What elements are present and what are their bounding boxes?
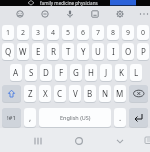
staticText: 1 <box>6 28 11 38</box>
button[interactable]: A <box>10 64 22 81</box>
button[interactable]: R <box>47 43 59 60</box>
button[interactable]: 6 <box>77 25 89 40</box>
button[interactable]: C <box>54 85 66 102</box>
staticText: 3 <box>36 28 41 38</box>
button[interactable]: Z <box>24 85 36 102</box>
staticText: Z <box>28 88 33 99</box>
button[interactable]: !#1 <box>2 108 21 127</box>
staticText: 4 <box>51 28 56 38</box>
staticText: P <box>141 46 146 57</box>
button[interactable]: B <box>84 85 96 102</box>
button[interactable]: S <box>25 64 37 81</box>
button[interactable] <box>63 7 77 21</box>
button[interactable]: 9 <box>122 25 134 40</box>
staticText: Y <box>81 46 86 57</box>
button[interactable]: J <box>100 64 112 81</box>
staticText: C <box>57 88 63 99</box>
staticText: 2 <box>21 28 26 38</box>
button[interactable]: 4 <box>47 25 59 40</box>
button[interactable] <box>13 7 27 21</box>
button[interactable]: H <box>85 64 97 81</box>
staticText: W <box>19 46 27 57</box>
button[interactable]: G <box>70 64 82 81</box>
button[interactable] <box>71 133 87 149</box>
staticText: . <box>119 112 122 123</box>
staticText: S <box>29 67 34 78</box>
staticText: F <box>59 67 64 78</box>
staticText: B <box>87 88 93 99</box>
button[interactable]: E <box>32 43 44 60</box>
button[interactable]: F <box>55 64 67 81</box>
staticText: 8 <box>111 28 116 38</box>
button[interactable]: L <box>130 64 142 81</box>
button[interactable]: M <box>114 85 126 102</box>
button[interactable] <box>38 7 52 21</box>
button[interactable]: , <box>24 108 36 127</box>
button[interactable]: 0 <box>137 25 149 40</box>
button[interactable]: 2 <box>17 25 29 40</box>
button[interactable]: K <box>115 64 127 81</box>
staticText: M <box>116 88 124 99</box>
staticText: D <box>43 67 49 78</box>
button[interactable] <box>2 85 21 102</box>
staticText: family medicine physicians <box>40 0 98 6</box>
button[interactable]: 1 <box>2 25 14 40</box>
staticText: English (US) <box>60 114 91 121</box>
button[interactable]: T <box>62 43 74 60</box>
staticText: L <box>134 67 139 78</box>
staticText: N <box>102 88 109 99</box>
button[interactable]: 3 <box>32 25 44 40</box>
button[interactable]: Y <box>77 43 89 60</box>
button[interactable] <box>129 85 148 102</box>
button[interactable]: 5 <box>62 25 74 40</box>
button[interactable]: W <box>17 43 29 60</box>
staticText: E <box>36 46 41 57</box>
button[interactable]: Q <box>2 43 14 60</box>
staticText: 5 <box>66 28 71 38</box>
staticText: 0 <box>141 28 146 38</box>
staticText: K <box>119 67 124 78</box>
staticText: 7 <box>96 28 101 38</box>
staticText: , <box>29 112 32 123</box>
button[interactable]: 7 <box>92 25 104 40</box>
button[interactable]: . <box>114 108 126 127</box>
staticText: U <box>95 46 101 57</box>
button[interactable]: O <box>122 43 134 60</box>
button[interactable]: I <box>107 43 119 60</box>
staticText: H <box>88 67 94 78</box>
staticText: O <box>125 46 132 57</box>
button[interactable] <box>129 108 148 127</box>
button[interactable]: 8 <box>107 25 119 40</box>
button[interactable]: N <box>99 85 111 102</box>
staticText: !#1 <box>7 114 16 122</box>
button[interactable] <box>113 7 127 21</box>
staticText: X <box>43 88 48 99</box>
staticText: 9 <box>126 28 131 38</box>
staticText: J <box>105 67 108 78</box>
staticText: T <box>66 46 71 57</box>
button[interactable]: P <box>137 43 149 60</box>
button[interactable]: English (US) <box>39 108 111 127</box>
staticText: I <box>112 46 115 57</box>
button[interactable] <box>30 133 46 149</box>
button[interactable] <box>88 7 102 21</box>
button[interactable]: U <box>92 43 104 60</box>
staticText: A <box>13 67 19 78</box>
staticText: V <box>73 88 78 99</box>
button[interactable]: D <box>40 64 52 81</box>
staticText: G <box>73 67 79 78</box>
button[interactable] <box>144 134 150 146</box>
button[interactable] <box>112 133 128 149</box>
button[interactable]: X <box>39 85 51 102</box>
button[interactable]: V <box>69 85 81 102</box>
staticText: 6 <box>81 28 86 38</box>
staticText: Q <box>5 46 12 57</box>
button[interactable] <box>137 7 150 21</box>
staticText: R <box>51 46 56 57</box>
